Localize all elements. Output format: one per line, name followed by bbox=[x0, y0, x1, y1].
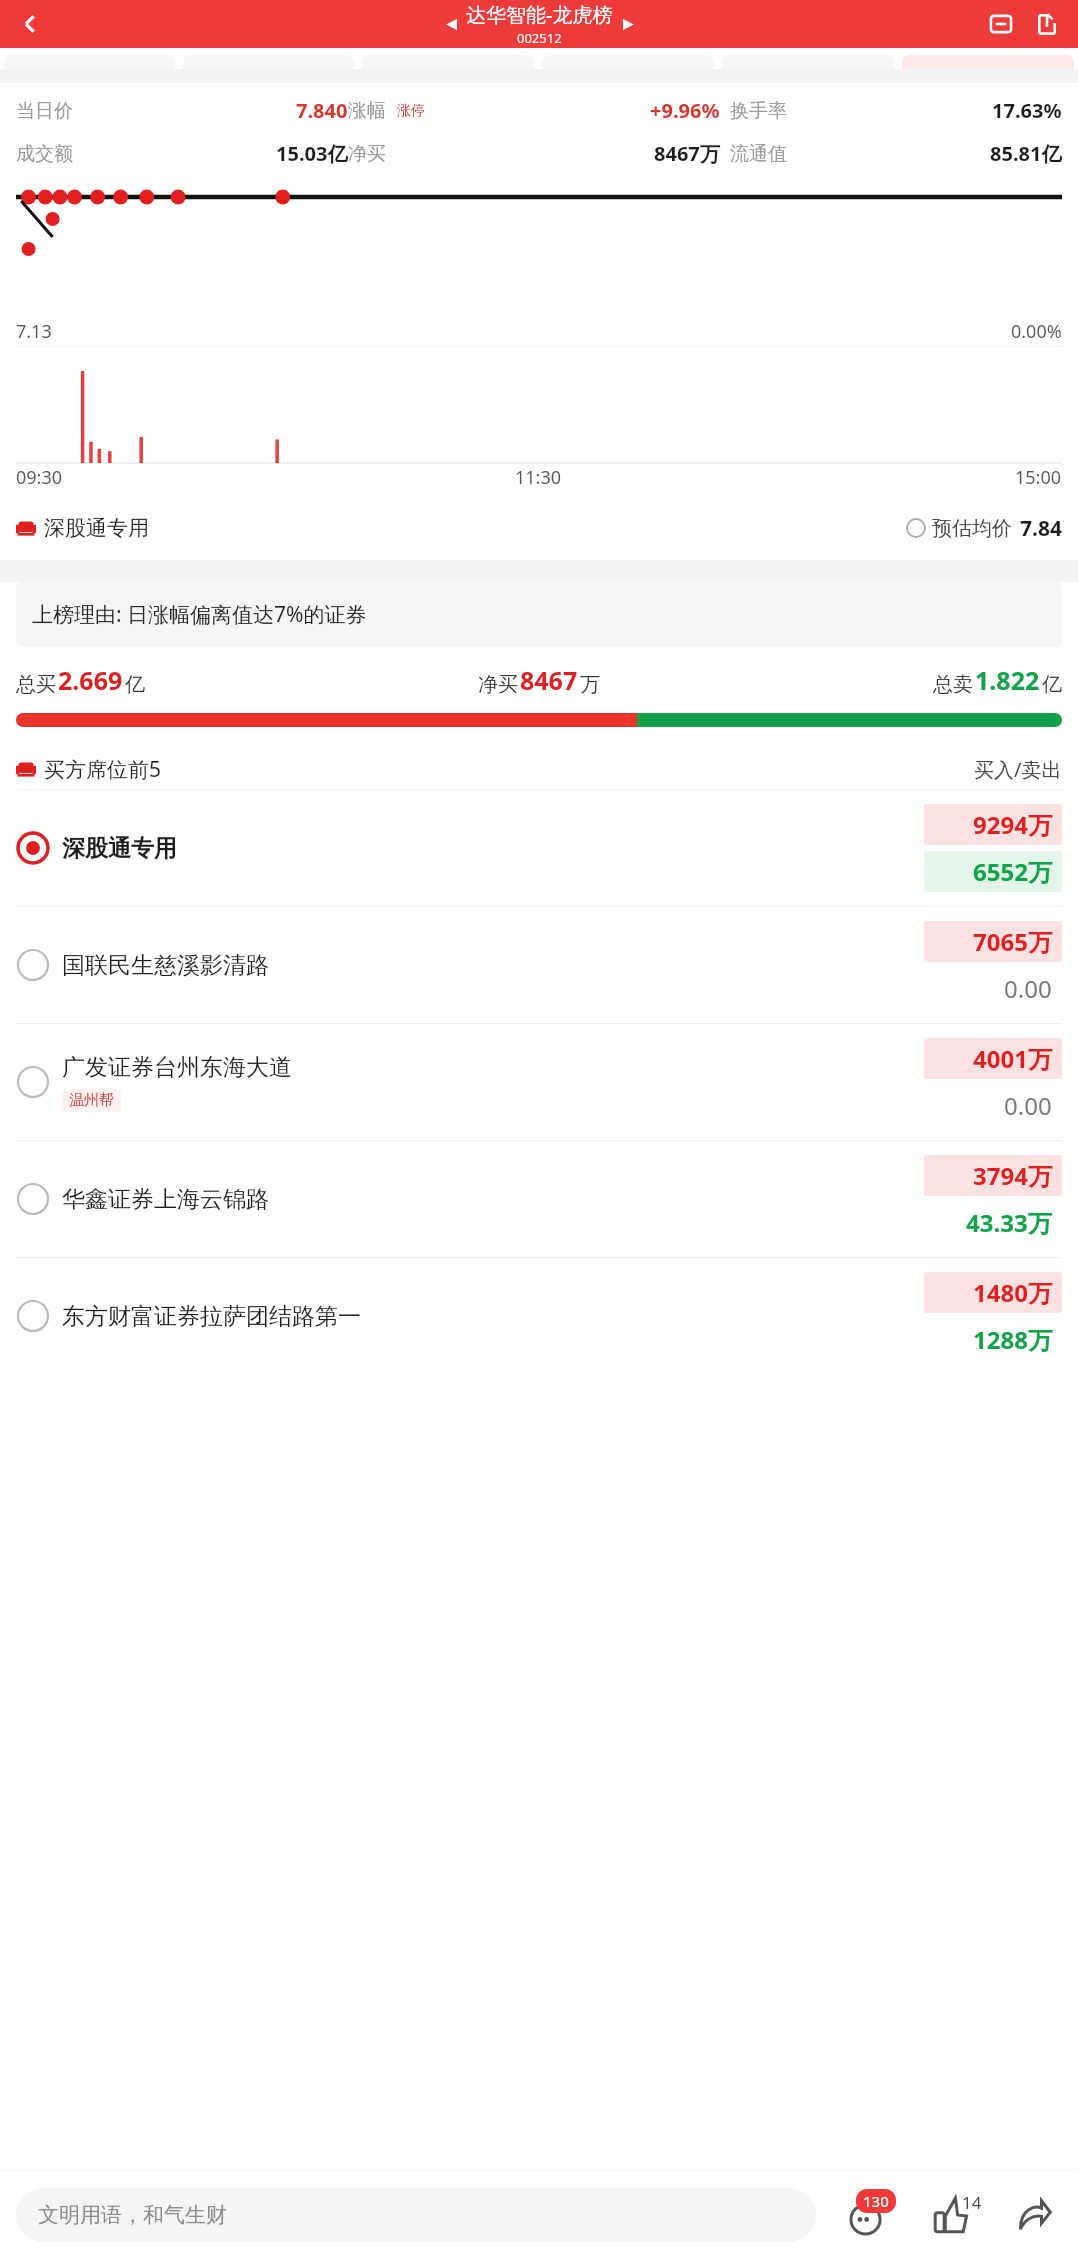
staticText: 14 bbox=[962, 2191, 982, 2214]
button[interactable]: Previous stock bbox=[436, 9, 466, 39]
staticText: 43.33万 bbox=[966, 1206, 1052, 1239]
staticText: 亿 bbox=[125, 672, 145, 697]
staticText: 达华智能-龙虎榜 bbox=[466, 1, 613, 28]
staticText: 15:00 bbox=[1015, 465, 1062, 490]
button[interactable]: Back bbox=[6, 0, 54, 48]
button[interactable]: 国联民生慈溪影清路 bbox=[0, 907, 1078, 1023]
button[interactable]: Next stock bbox=[613, 9, 643, 39]
staticText: 总卖 bbox=[933, 672, 973, 697]
staticText: 预估均价 bbox=[932, 516, 1012, 541]
staticText: 7.84 bbox=[1020, 514, 1062, 543]
button[interactable]: Share bbox=[1006, 2187, 1062, 2243]
staticText: 4001万 bbox=[973, 1042, 1052, 1075]
staticText: 买方席位前5 bbox=[44, 755, 162, 784]
staticText: 09:30 bbox=[16, 465, 63, 490]
staticText: 换手率 bbox=[730, 99, 787, 123]
staticText: 0.00% bbox=[1011, 319, 1062, 344]
staticText: 17.63% bbox=[992, 97, 1062, 124]
staticText: 上榜理由: 日涨幅偏离值达7%的证券 bbox=[32, 600, 367, 629]
button[interactable]: 深股通专用 bbox=[0, 790, 1078, 906]
button[interactable]: Collapse bbox=[978, 1, 1024, 47]
staticText: 成交额 bbox=[16, 142, 73, 166]
staticText: +9.96% bbox=[650, 97, 720, 124]
staticText: 流通值 bbox=[730, 142, 787, 166]
staticText: 深股通专用 bbox=[44, 515, 149, 541]
staticText: 8467万 bbox=[654, 140, 720, 167]
staticText: 万 bbox=[580, 672, 600, 697]
staticText: 华鑫证券上海云锦路 bbox=[62, 1185, 269, 1214]
staticText: 文明用语，和气生财 bbox=[38, 2202, 227, 2228]
button[interactable]: 广发证券台州东海大道 bbox=[0, 1024, 1078, 1140]
staticText: 6552万 bbox=[973, 855, 1052, 888]
button[interactable]: Comments bbox=[842, 2187, 898, 2243]
button[interactable]: Like bbox=[924, 2187, 980, 2243]
staticText: 净买 bbox=[348, 142, 386, 166]
staticText: 国联民生慈溪影清路 bbox=[62, 951, 269, 980]
staticText: 130 bbox=[863, 2191, 889, 2211]
staticText: 7065万 bbox=[973, 925, 1052, 958]
staticText: 涨停 bbox=[397, 102, 425, 120]
staticText: 7.13 bbox=[16, 319, 52, 344]
staticText: 广发证券台州东海大道 bbox=[62, 1053, 292, 1082]
staticText: 85.81亿 bbox=[990, 140, 1062, 167]
button[interactable]: 上榜理由: 日涨幅偏离值达7%的证券 bbox=[16, 582, 1062, 647]
staticText: 11:30 bbox=[515, 465, 562, 490]
staticText: 0.00 bbox=[1004, 1089, 1052, 1122]
staticText: 温州帮 bbox=[69, 1091, 114, 1110]
staticText: 15.03亿 bbox=[276, 140, 348, 167]
button[interactable]: 东方财富证券拉萨团结路第一 bbox=[0, 1258, 1078, 1374]
button[interactable]: 华鑫证券上海云锦路 bbox=[0, 1141, 1078, 1257]
staticText: 0.00 bbox=[1004, 972, 1052, 1005]
staticText: 亿 bbox=[1042, 672, 1062, 697]
staticText: 东方财富证券拉萨团结路第一 bbox=[62, 1302, 361, 1331]
staticText: 1288万 bbox=[973, 1323, 1052, 1356]
staticText: 买入/卖出 bbox=[974, 756, 1062, 783]
staticText: 9294万 bbox=[973, 808, 1052, 841]
staticText: 1.822 bbox=[975, 663, 1040, 697]
staticText: 2.669 bbox=[58, 663, 123, 697]
staticText: 深股通专用 bbox=[62, 834, 177, 863]
staticText: 3794万 bbox=[973, 1159, 1052, 1192]
staticText: 7.840 bbox=[296, 97, 348, 124]
staticText: 净买 bbox=[478, 672, 518, 697]
staticText: 8467 bbox=[520, 663, 578, 697]
staticText: 1480万 bbox=[973, 1276, 1052, 1309]
staticText: 002512 bbox=[517, 29, 562, 47]
staticText: 总买 bbox=[16, 672, 56, 697]
staticText: 当日价 bbox=[16, 99, 73, 123]
button[interactable]: 文明用语，和气生财 bbox=[16, 2188, 816, 2242]
button[interactable]: Share bbox=[1024, 1, 1070, 47]
staticText: 涨幅 bbox=[348, 99, 386, 123]
